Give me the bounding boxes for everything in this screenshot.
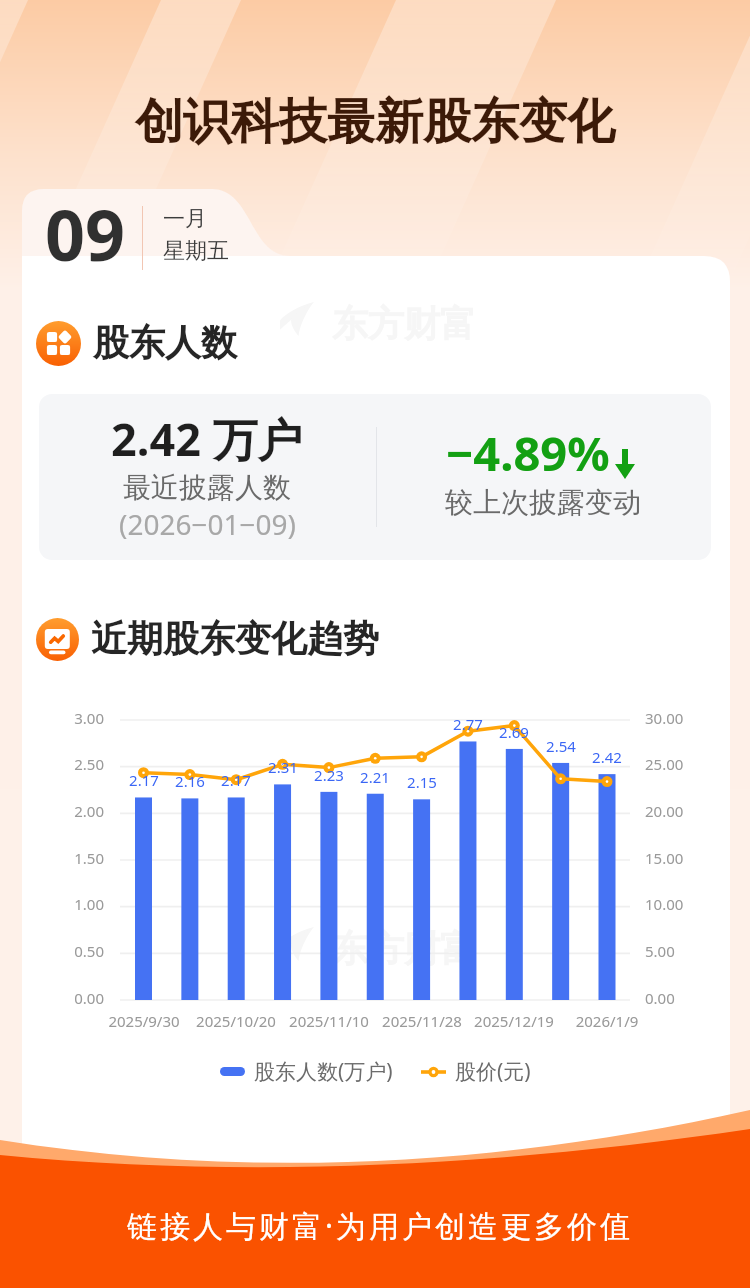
staticText: 2.15	[392, 772, 452, 792]
staticText: 2.00	[48, 801, 104, 821]
button[interactable]: 股东人数	[36, 321, 237, 366]
staticText: 2.69	[484, 722, 544, 742]
staticText: 0.00	[48, 988, 104, 1008]
staticText: 链接人与财富·为用户创造更多价值	[127, 1205, 634, 1246]
staticText: 2025/11/28	[362, 1011, 482, 1031]
button[interactable]: 股价(元)	[421, 1057, 531, 1086]
staticText: 股东人数	[93, 320, 237, 365]
staticText: 0.50	[48, 941, 104, 961]
staticText: 2.17	[206, 770, 266, 790]
other: 股东人数	[36, 321, 81, 366]
staticText: 2.77	[438, 714, 498, 734]
staticText: 东方财富	[332, 301, 476, 346]
staticText: 2.54	[531, 736, 591, 756]
staticText: 25.00	[645, 754, 684, 774]
staticText: 较上次披露变动	[445, 485, 641, 520]
staticText: 2025/10/20	[176, 1011, 296, 1031]
staticText: 2.50	[48, 754, 104, 774]
staticText: 2025/12/19	[454, 1011, 574, 1031]
staticText: 2.31	[253, 757, 313, 777]
button[interactable]	[22, 189, 290, 256]
staticText: 2.23	[299, 765, 359, 785]
staticText: 东方财富	[332, 926, 476, 971]
staticText: 2026/1/9	[547, 1011, 667, 1031]
staticText: 0.00	[645, 988, 675, 1008]
staticText: 2025/11/10	[269, 1011, 389, 1031]
staticText: 一月	[163, 205, 207, 233]
staticText: 2025/9/30	[84, 1011, 204, 1031]
staticText: 2.42 万户	[111, 408, 303, 469]
staticText: 09	[45, 186, 126, 281]
staticText: 创识科技最新股东变化	[135, 92, 615, 152]
button[interactable]: 近期股东变化趋势	[36, 617, 379, 662]
staticText: 15.00	[645, 848, 684, 868]
staticText: 近期股东变化趋势	[91, 616, 379, 661]
staticText: 1.00	[48, 894, 104, 914]
staticText: 2.42	[577, 747, 637, 767]
staticText: 5.00	[645, 941, 675, 961]
staticText: 最近披露人数	[123, 470, 291, 505]
other: 近期股东变化趋势	[36, 618, 79, 661]
staticText: 2.17	[114, 770, 174, 790]
staticText: 股价(元)	[455, 1057, 531, 1086]
staticText: (2026−01−09)	[119, 505, 296, 543]
staticText: 1.50	[48, 848, 104, 868]
button[interactable]: 股东人数(万户)	[220, 1057, 393, 1086]
staticText: −4.89%	[446, 421, 610, 485]
staticText: 20.00	[645, 801, 684, 821]
staticText: 2.21	[345, 767, 405, 787]
staticText: 星期五	[163, 237, 229, 265]
button[interactable]: 2.42 万户	[39, 394, 711, 560]
staticText: 3.00	[48, 708, 104, 728]
staticText: 30.00	[645, 708, 684, 728]
staticText: 股东人数(万户)	[254, 1057, 393, 1086]
staticText: 10.00	[645, 894, 684, 914]
staticText: 2.16	[160, 771, 220, 791]
